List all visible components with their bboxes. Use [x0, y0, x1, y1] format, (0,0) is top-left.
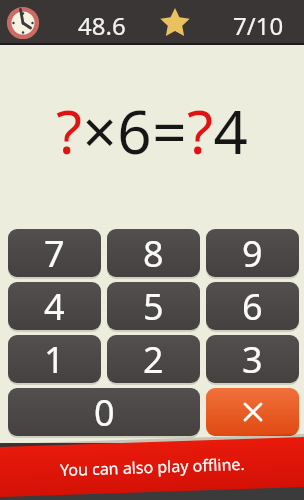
button[interactable]: 6	[206, 282, 299, 330]
button[interactable]: 2	[107, 335, 200, 383]
staticText: 6	[242, 282, 263, 330]
button[interactable]: 7	[8, 229, 101, 277]
button[interactable]: 8	[107, 229, 200, 277]
staticText: 1	[44, 335, 65, 383]
staticText: ?×6=?4	[56, 90, 249, 172]
button[interactable]	[206, 388, 299, 436]
button[interactable]: 9	[206, 229, 299, 277]
staticText: 7	[44, 229, 65, 277]
staticText: 9	[242, 229, 263, 277]
staticText: 3	[242, 335, 263, 383]
staticText: 8	[143, 229, 164, 277]
staticText: 0	[94, 388, 115, 436]
button[interactable]: 5	[107, 282, 200, 330]
staticText: 48.6	[78, 9, 126, 42]
button[interactable]: 1	[8, 335, 101, 383]
button[interactable]: 0	[8, 388, 200, 436]
button[interactable]: 4	[8, 282, 101, 330]
staticText: 2	[143, 335, 164, 383]
button[interactable]: 3	[206, 335, 299, 383]
staticText: You can also play offline.	[60, 453, 245, 481]
staticText: 7/10	[233, 9, 284, 42]
staticText: 4	[44, 282, 65, 330]
staticText: 5	[143, 282, 164, 330]
button[interactable]: You can also play offline.	[0, 437, 304, 497]
